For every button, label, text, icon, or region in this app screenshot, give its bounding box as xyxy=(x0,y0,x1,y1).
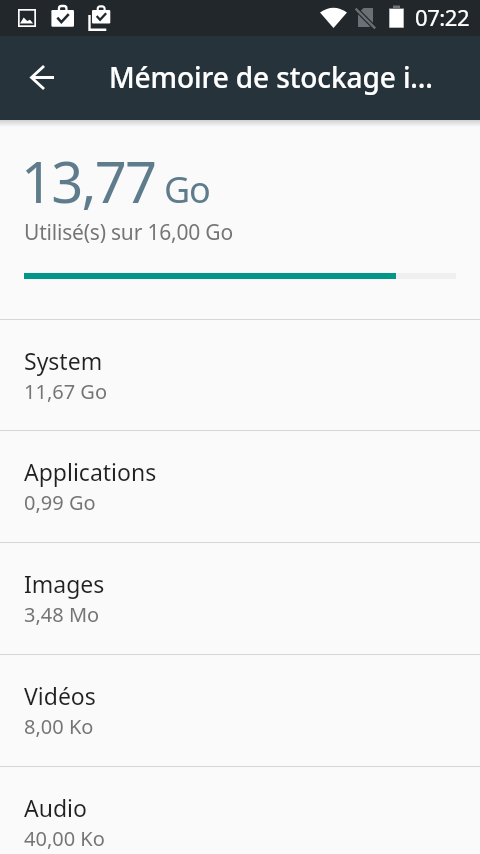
staticText: 07:22 xyxy=(415,2,470,32)
staticText: Images xyxy=(24,568,105,599)
staticText: 0,99 Go xyxy=(24,489,96,516)
button[interactable]: Applications xyxy=(0,430,480,542)
staticText: Mémoire de stockage interne xyxy=(109,58,444,96)
staticText: System xyxy=(24,345,103,376)
button[interactable]: Images xyxy=(0,542,480,654)
staticText: 11,67 Go xyxy=(24,378,107,405)
button[interactable]: Audio xyxy=(0,766,480,854)
staticText: Audio xyxy=(24,792,87,823)
staticText: 8,00 Ko xyxy=(24,713,94,740)
staticText: 40,00 Ko xyxy=(24,825,105,852)
staticText: 3,48 Mo xyxy=(24,601,100,628)
staticText: Utilisé(s) sur 16,00 Go xyxy=(24,218,233,247)
button[interactable]: Retour xyxy=(18,54,66,102)
staticText: Vidéos xyxy=(24,680,96,711)
staticText: Applications xyxy=(24,456,157,487)
button[interactable]: System xyxy=(0,319,480,430)
staticText: Go xyxy=(164,165,210,214)
button[interactable]: Vidéos xyxy=(0,654,480,766)
staticText: 13,77 xyxy=(21,143,156,219)
